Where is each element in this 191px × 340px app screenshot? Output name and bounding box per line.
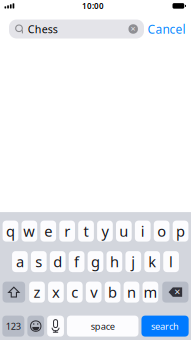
button[interactable]: z (29, 282, 45, 303)
staticText: e (44, 221, 52, 241)
staticText: w (23, 221, 35, 241)
button[interactable]: space (67, 316, 138, 337)
button[interactable]: c (67, 282, 83, 303)
staticText: u (119, 221, 128, 241)
button[interactable]: g (88, 251, 103, 272)
staticText: o (157, 221, 166, 241)
staticText: y (101, 221, 108, 241)
button[interactable]: o (154, 221, 169, 242)
button[interactable]: k (144, 251, 160, 272)
button[interactable]: m (143, 282, 158, 303)
staticText: i (141, 221, 145, 241)
button[interactable]: Clear text (128, 24, 138, 34)
staticText: b (108, 282, 117, 302)
button[interactable]: e (40, 221, 56, 242)
button[interactable]: n (124, 282, 139, 303)
button[interactable]: h (106, 251, 122, 272)
staticText: ✕ (130, 25, 136, 33)
button[interactable]: Shift (3, 282, 25, 303)
staticText: k (148, 252, 156, 271)
button[interactable]: s (31, 251, 47, 272)
staticText: p (176, 221, 185, 241)
button[interactable]: a (12, 251, 28, 272)
button[interactable]: i (135, 221, 151, 242)
staticText: v (90, 282, 97, 302)
button[interactable]: b (105, 282, 120, 303)
staticText: m (143, 282, 157, 302)
staticText: a (16, 252, 24, 271)
staticText: 10:00 (82, 1, 104, 11)
staticText: s (35, 252, 42, 271)
button[interactable]: Delete (162, 282, 188, 303)
button[interactable]: d (50, 251, 65, 272)
staticText: d (53, 252, 62, 271)
button[interactable]: w (21, 221, 37, 242)
staticText: g (91, 252, 100, 271)
button[interactable]: Cancel (147, 21, 185, 37)
button[interactable]: Dictate (47, 316, 64, 337)
staticText: t (83, 221, 88, 241)
button[interactable]: u (116, 221, 132, 242)
staticText: h (110, 252, 119, 271)
staticText: q (6, 221, 15, 241)
button[interactable]: r (59, 221, 75, 242)
staticText: c (71, 282, 78, 302)
staticText: z (33, 282, 40, 302)
staticText: search (151, 320, 179, 332)
button[interactable]: t (78, 221, 94, 242)
staticText: j (131, 252, 135, 271)
button[interactable]: x (48, 282, 64, 303)
button[interactable]: q (3, 221, 18, 242)
staticText: Cancel (147, 21, 185, 37)
staticText: 123 (6, 320, 21, 332)
staticText: n (127, 282, 136, 302)
staticText: f (74, 252, 79, 271)
staticText: space (91, 320, 115, 332)
button[interactable]: y (97, 221, 113, 242)
button[interactable]: search (141, 316, 189, 337)
button[interactable]: l (163, 251, 179, 272)
button[interactable]: Emoji (27, 316, 44, 337)
staticText: l (169, 252, 173, 271)
staticText: x (52, 282, 60, 302)
button[interactable]: 123 (2, 316, 24, 337)
button[interactable]: f (69, 251, 84, 272)
button[interactable]: v (86, 282, 102, 303)
button[interactable]: p (173, 221, 188, 242)
button[interactable]: j (125, 251, 141, 272)
staticText: × (174, 284, 180, 299)
staticText: Chess (28, 22, 58, 36)
staticText: r (64, 221, 70, 241)
